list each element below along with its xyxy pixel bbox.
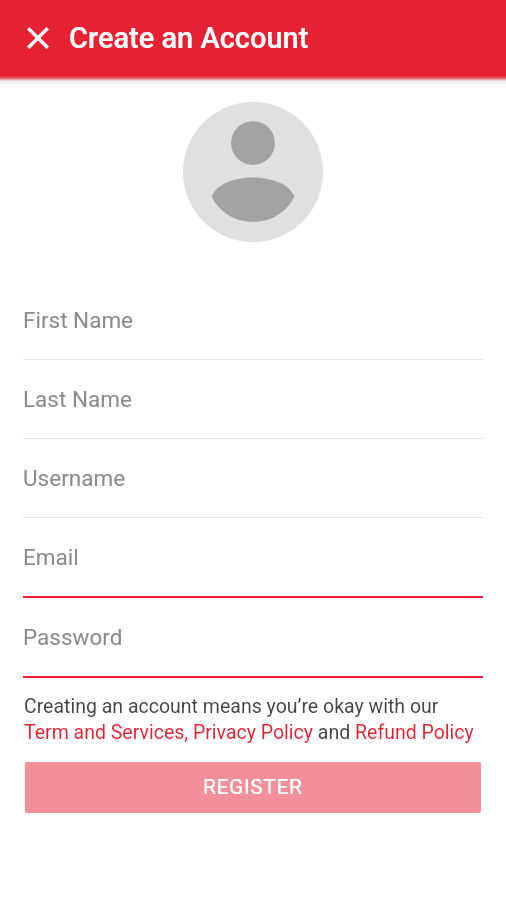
staticText: Last Name (23, 386, 132, 412)
button[interactable]: Password (0, 598, 506, 678)
button[interactable]: First Name (0, 281, 506, 360)
button[interactable]: Email (0, 518, 506, 598)
button[interactable]: Close (16, 16, 60, 60)
button[interactable]: Username (0, 439, 506, 518)
staticText: Username (23, 465, 126, 491)
staticText: REGISTER (203, 775, 303, 800)
staticText: Email (23, 544, 79, 570)
staticText: Password (23, 624, 123, 650)
button[interactable]: REGISTER (25, 762, 481, 813)
staticText: Creating an account means you’re okay wi… (24, 695, 439, 718)
staticText: First Name (23, 307, 134, 333)
staticText: Create an Account (69, 21, 309, 55)
staticText: Term and Services, Privacy Policy and Re… (24, 721, 474, 744)
button[interactable]: Last Name (0, 360, 506, 439)
